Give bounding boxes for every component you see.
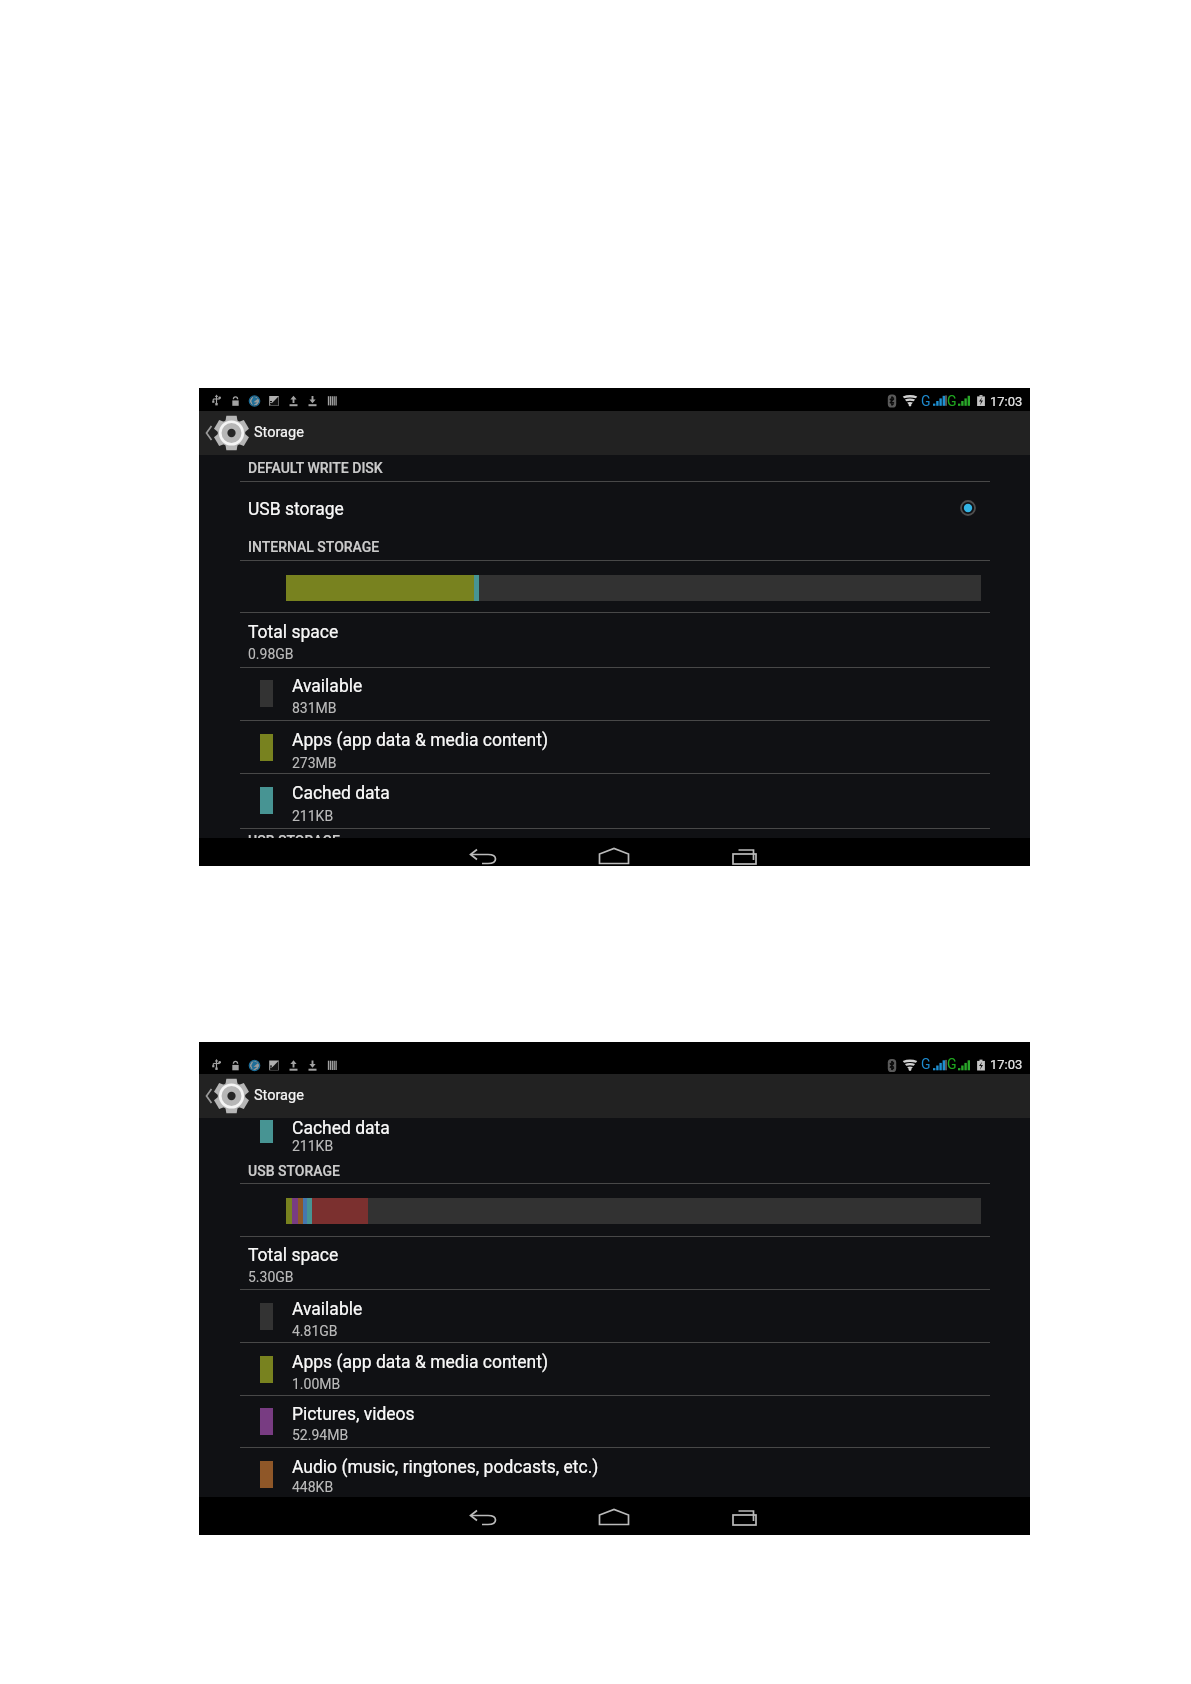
staticText: 4.81GB xyxy=(292,1323,338,1339)
staticText: 1.00MB xyxy=(292,1376,341,1392)
staticText: Available xyxy=(292,1299,363,1320)
button[interactable]: Available xyxy=(199,1287,1030,1340)
staticText: USB storage xyxy=(248,499,344,520)
staticText: USB STORAGE xyxy=(248,1163,340,1179)
staticText: Cached data xyxy=(292,1118,390,1139)
staticText: 831MB xyxy=(292,700,337,716)
staticText: Total space xyxy=(248,622,339,643)
button[interactable]: Apps (app data & media content) xyxy=(199,718,1030,771)
staticText: 5.30GB xyxy=(248,1269,294,1285)
button[interactable]: Apps (app data & media content) xyxy=(199,1340,1030,1393)
staticText: USB STORAGE xyxy=(248,833,340,849)
staticText: Audio (music, ringtones, podcasts, etc.) xyxy=(292,1457,599,1478)
button[interactable]: USB storage xyxy=(199,487,1030,535)
button[interactable]: Cached data xyxy=(199,771,1030,824)
button[interactable]: Back xyxy=(459,838,509,866)
staticText: 17:03 xyxy=(990,1057,1023,1072)
staticText: 211KB xyxy=(292,808,334,824)
staticText: Cached data xyxy=(292,783,390,804)
staticText: G xyxy=(921,1056,931,1072)
button[interactable]: Total space xyxy=(199,610,1030,663)
staticText: Storage xyxy=(254,1087,304,1104)
staticText: 448KB xyxy=(292,1479,334,1495)
button[interactable]: Navigate up xyxy=(199,1074,255,1118)
staticText: Apps (app data & media content) xyxy=(292,1352,549,1373)
button[interactable]: Home xyxy=(589,838,639,866)
staticText: 211KB xyxy=(292,1138,334,1154)
staticText: G xyxy=(947,1056,957,1072)
staticText: INTERNAL STORAGE xyxy=(248,539,380,555)
staticText: 52.94MB xyxy=(292,1427,349,1443)
staticText: DEFAULT WRITE DISK xyxy=(248,460,383,476)
staticText: Storage xyxy=(254,424,304,441)
button[interactable]: Available xyxy=(199,664,1030,717)
button[interactable]: Audio (music, ringtones, podcasts, etc.) xyxy=(199,1445,1030,1498)
staticText: Total space xyxy=(248,1245,339,1266)
staticText: G xyxy=(921,393,931,409)
staticText: 17:03 xyxy=(990,394,1023,409)
button[interactable]: Total space xyxy=(199,1233,1030,1286)
button[interactable]: Recent apps xyxy=(721,1497,771,1535)
button[interactable]: Back xyxy=(459,1497,509,1535)
button[interactable]: Navigate up xyxy=(199,411,255,455)
staticText: Apps (app data & media content) xyxy=(292,730,549,751)
button[interactable]: Home xyxy=(589,1497,639,1535)
button[interactable]: Recent apps xyxy=(721,838,771,866)
button[interactable]: Pictures, videos xyxy=(199,1392,1030,1445)
staticText: 273MB xyxy=(292,755,337,771)
button[interactable]: Cached data xyxy=(199,1118,1030,1154)
staticText: 0.98GB xyxy=(248,646,294,662)
staticText: Pictures, videos xyxy=(292,1404,415,1425)
staticText: Available xyxy=(292,676,363,697)
staticText: G xyxy=(947,393,957,409)
